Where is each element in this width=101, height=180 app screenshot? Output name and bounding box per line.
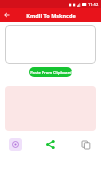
button[interactable]: Copy xyxy=(79,138,92,151)
staticText: Paste From Clipboard xyxy=(30,70,72,75)
staticText: 11:52 xyxy=(88,2,99,7)
staticText: Kmdll To Mskncde xyxy=(26,12,76,19)
button[interactable]: Paste From Clipboard xyxy=(29,67,72,77)
button[interactable]: Share xyxy=(44,138,57,151)
button[interactable]: Back xyxy=(0,8,14,22)
button[interactable]: Share to WhatsApp xyxy=(9,138,22,151)
button[interactable]: Text input xyxy=(5,25,96,64)
